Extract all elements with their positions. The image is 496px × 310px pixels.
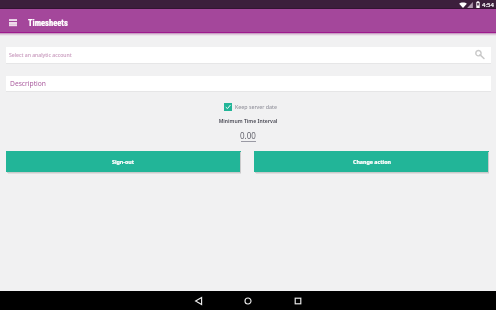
button[interactable]: Select an analytic account <box>6 47 491 63</box>
staticText: Change action <box>353 158 391 165</box>
button[interactable]: Open navigation drawer <box>7 16 19 28</box>
staticText: 4:54 <box>482 1 494 9</box>
button[interactable]: Change action <box>254 151 489 172</box>
button[interactable]: Description <box>6 76 491 91</box>
button[interactable]: Search <box>474 49 486 61</box>
button[interactable]: Recent apps <box>287 291 308 310</box>
staticText: Sign-out <box>112 158 135 165</box>
staticText: 0.00 <box>240 130 256 141</box>
button[interactable]: Sign-out <box>6 151 241 172</box>
staticText: Select an analytic account <box>9 51 72 58</box>
staticText: Keep server date <box>235 103 277 110</box>
button[interactable]: Back <box>188 291 209 310</box>
staticText: Minimum Time Interval <box>0 118 496 125</box>
staticText: Timesheets <box>28 18 68 28</box>
button[interactable]: Keep server date <box>224 102 277 111</box>
button[interactable]: Home <box>237 291 258 310</box>
staticText: Description <box>10 79 46 88</box>
